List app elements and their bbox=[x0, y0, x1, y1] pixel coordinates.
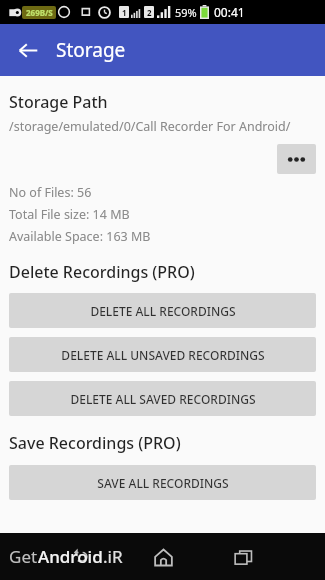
staticText: 59% bbox=[175, 5, 197, 20]
button[interactable]: SAVE ALL RECORDINGS bbox=[9, 465, 316, 500]
staticText: DELETE ALL SAVED RECORDINGS bbox=[70, 391, 256, 407]
button[interactable]: More options bbox=[277, 144, 316, 174]
button[interactable]: Home bbox=[142, 536, 184, 578]
button[interactable]: Recents bbox=[222, 536, 264, 578]
staticText: 2 bbox=[147, 7, 152, 18]
staticText: Delete Recordings (PRO) bbox=[9, 261, 195, 283]
button[interactable]: DELETE ALL RECORDINGS bbox=[9, 293, 316, 328]
staticText: 269B/S bbox=[26, 7, 53, 18]
button[interactable]: DELETE ALL UNSAVED RECORDINGS bbox=[9, 337, 316, 372]
staticText: Available Space: 163 MB bbox=[9, 228, 151, 245]
button[interactable]: DELETE ALL SAVED RECORDINGS bbox=[9, 381, 316, 416]
staticText: Get bbox=[9, 545, 38, 568]
button[interactable]: Back bbox=[60, 536, 102, 578]
staticText: Android bbox=[38, 545, 103, 568]
staticText: Save Recordings (PRO) bbox=[9, 432, 181, 454]
staticText: Total File size: 14 MB bbox=[9, 206, 130, 223]
staticText: .iR bbox=[103, 545, 123, 568]
staticText: DELETE ALL RECORDINGS bbox=[90, 303, 236, 319]
staticText: 00:41 bbox=[214, 4, 245, 20]
staticText: No of Files: 56 bbox=[9, 184, 92, 201]
staticText: Storage bbox=[56, 37, 126, 63]
button[interactable]: Back bbox=[8, 30, 48, 70]
staticText: DELETE ALL UNSAVED RECORDINGS bbox=[61, 347, 265, 363]
staticText: 1 bbox=[122, 7, 127, 18]
staticText: SAVE ALL RECORDINGS bbox=[97, 475, 229, 491]
staticText: Storage Path bbox=[9, 91, 108, 113]
staticText: /storage/emulated/0/Call Recorder For An… bbox=[9, 118, 291, 135]
